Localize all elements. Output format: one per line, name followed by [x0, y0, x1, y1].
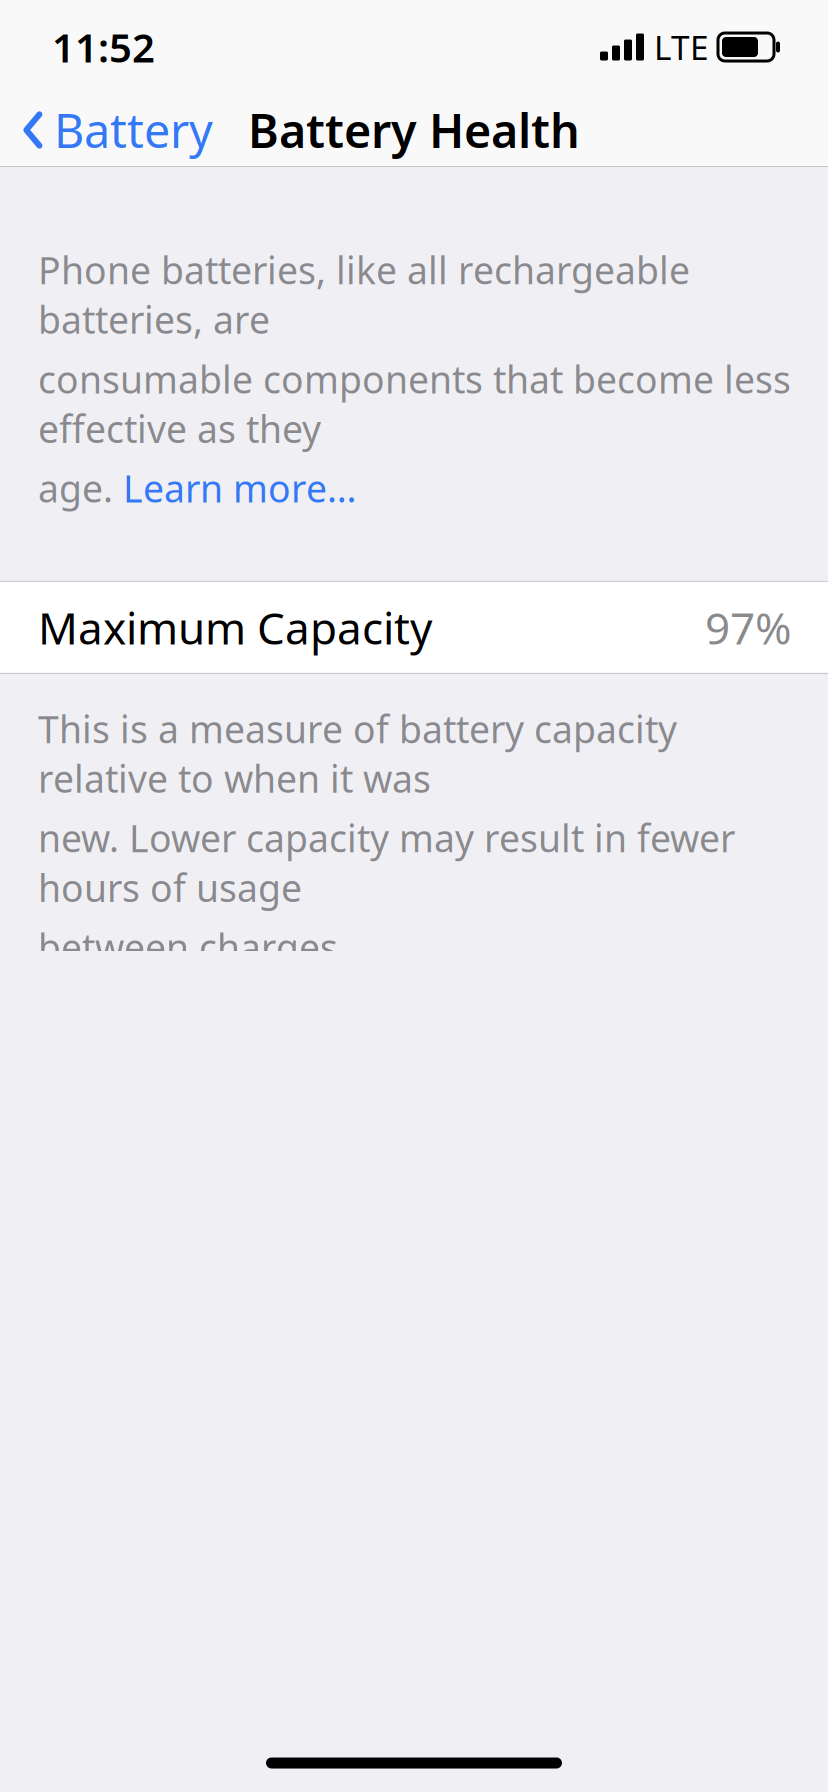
staticText: age.	[38, 463, 123, 513]
staticText: between charges.	[38, 922, 348, 972]
button[interactable]: Learn more…	[123, 463, 357, 513]
button[interactable]: Maximum Capacity	[0, 582, 828, 673]
staticText: Battery Health	[248, 99, 580, 161]
staticText: LTE	[654, 25, 709, 69]
staticText: consumable components that become less e…	[38, 354, 791, 453]
staticText: new. Lower capacity may result in fewer …	[38, 813, 735, 912]
staticText: Learn more…	[123, 463, 357, 513]
staticText: This is a measure of battery capacity re…	[38, 704, 677, 803]
staticText: Maximum Capacity	[38, 598, 432, 657]
staticText: 97%	[705, 598, 792, 657]
button[interactable]: Battery	[0, 94, 227, 166]
staticText: Phone batteries, like all rechargeable b…	[38, 245, 690, 344]
staticText: Battery	[54, 99, 213, 161]
staticText: charging routine so it can wait to finis…	[38, 1732, 723, 1792]
staticText: 11:52	[52, 20, 155, 73]
